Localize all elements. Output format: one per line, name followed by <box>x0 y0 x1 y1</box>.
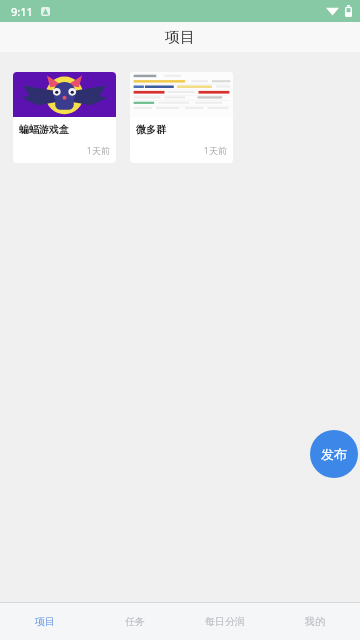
button[interactable]: 项目 <box>0 603 90 640</box>
button[interactable]: 任务 <box>90 603 180 640</box>
staticText: 项目 <box>165 28 195 47</box>
staticText: 任务 <box>125 615 145 628</box>
button[interactable]: 我的 <box>270 603 360 640</box>
staticText: 微多群 <box>136 123 166 136</box>
staticText: 项目 <box>35 615 55 628</box>
button[interactable]: 蝙蝠游戏盒 <box>13 72 116 163</box>
staticText: 每日分润 <box>205 615 245 628</box>
button[interactable]: 每日分润 <box>180 603 270 640</box>
button[interactable]: 发布 <box>310 430 358 478</box>
staticText: 9:11 <box>11 4 33 19</box>
staticText: 蝙蝠游戏盒 <box>19 123 69 136</box>
staticText: 1天前 <box>130 144 227 156</box>
staticText: 我的 <box>305 615 325 628</box>
staticText: 发布 <box>321 446 347 462</box>
button[interactable]: 微多群 <box>130 72 233 163</box>
staticText: 1天前 <box>13 144 110 156</box>
